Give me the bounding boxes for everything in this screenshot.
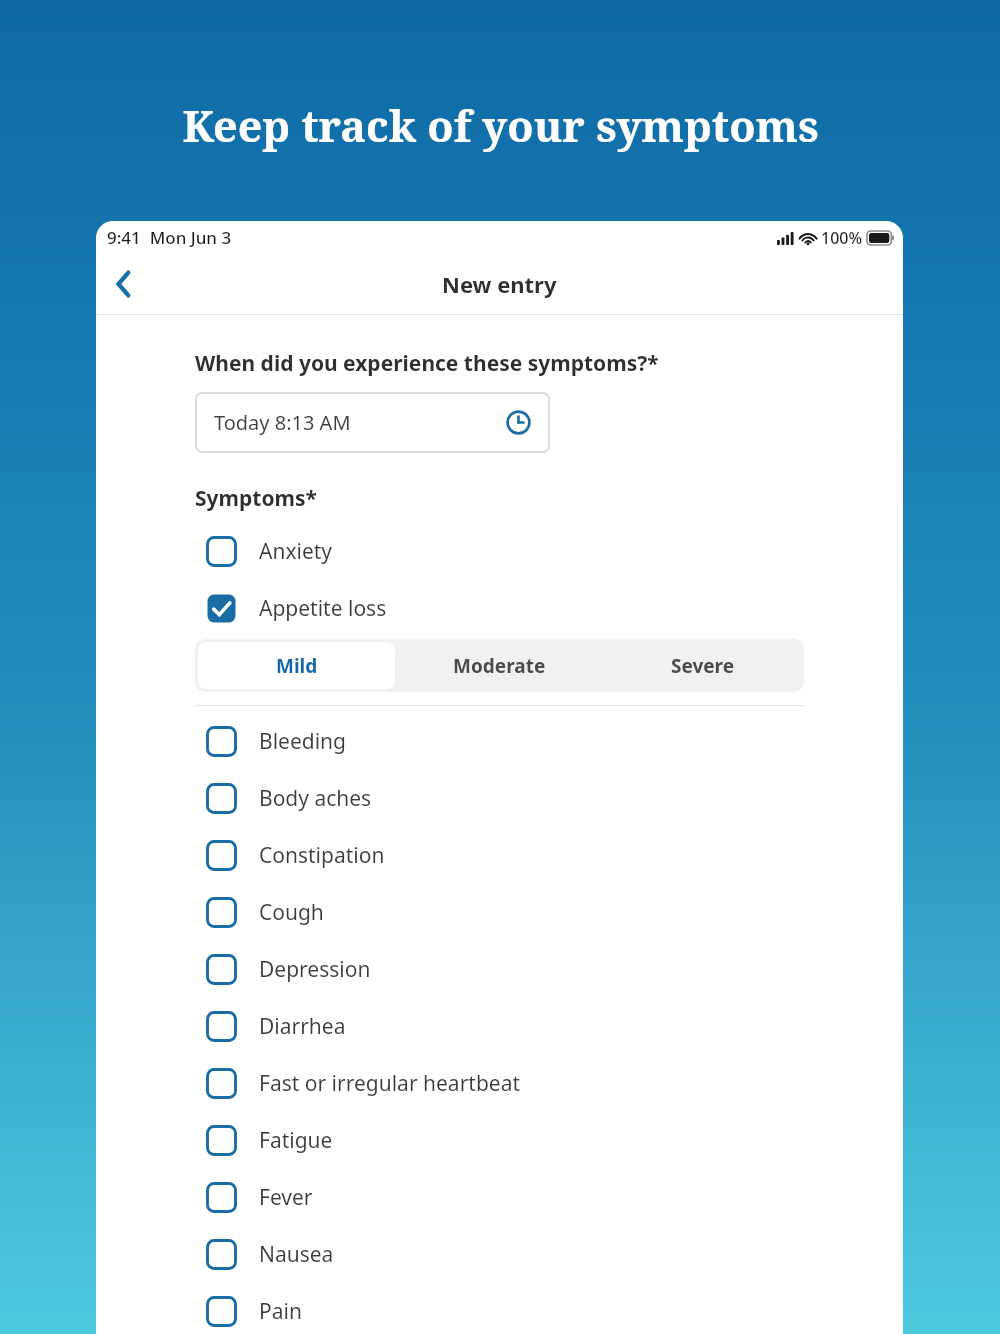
- staticText: Body aches: [259, 784, 372, 813]
- staticText: Anxiety: [259, 537, 333, 566]
- staticText: Cough: [259, 898, 324, 927]
- staticText: Nausea: [259, 1240, 334, 1269]
- button[interactable]: Appetite loss: [195, 580, 804, 637]
- staticText: Appetite loss: [259, 594, 387, 623]
- button[interactable]: Mild: [198, 642, 395, 689]
- staticText: Severe: [671, 653, 735, 679]
- button[interactable]: Moderate: [401, 642, 598, 689]
- staticText: Depression: [259, 955, 371, 984]
- button[interactable]: Cough: [195, 884, 804, 941]
- button[interactable]: Constipation: [195, 827, 804, 884]
- staticText: Symptoms*: [195, 484, 317, 513]
- button[interactable]: Fever: [195, 1169, 804, 1226]
- staticText: Fever: [259, 1183, 313, 1212]
- staticText: Constipation: [259, 841, 385, 870]
- button[interactable]: Fatigue: [195, 1112, 804, 1169]
- button[interactable]: Severe: [604, 642, 801, 689]
- staticText: Keep track of your symptoms: [182, 96, 819, 155]
- staticText: Moderate: [453, 653, 546, 679]
- button[interactable]: Body aches: [195, 770, 804, 827]
- staticText: Mild: [276, 653, 318, 679]
- button[interactable]: Bleeding: [195, 713, 804, 770]
- staticText: New entry: [442, 269, 557, 299]
- staticText: Bleeding: [259, 727, 346, 756]
- staticText: Fast or irregular heartbeat: [259, 1069, 521, 1098]
- button[interactable]: Today 8:13 AM: [195, 392, 550, 453]
- button[interactable]: Pain: [195, 1283, 804, 1334]
- staticText: Fatigue: [259, 1126, 333, 1155]
- button[interactable]: Fast or irregular heartbeat: [195, 1055, 804, 1112]
- button[interactable]: Nausea: [195, 1226, 804, 1283]
- staticText: Diarrhea: [259, 1012, 346, 1041]
- staticText: When did you experience these symptoms?*: [195, 349, 659, 378]
- staticText: Today 8:13 AM: [214, 409, 351, 436]
- staticText: 100%: [821, 227, 863, 249]
- button[interactable]: Depression: [195, 941, 804, 998]
- button[interactable]: Back: [96, 257, 150, 311]
- button[interactable]: Anxiety: [195, 523, 804, 580]
- staticText: 9:41 Mon Jun 3: [107, 226, 232, 249]
- button[interactable]: Diarrhea: [195, 998, 804, 1055]
- staticText: Pain: [259, 1297, 302, 1326]
